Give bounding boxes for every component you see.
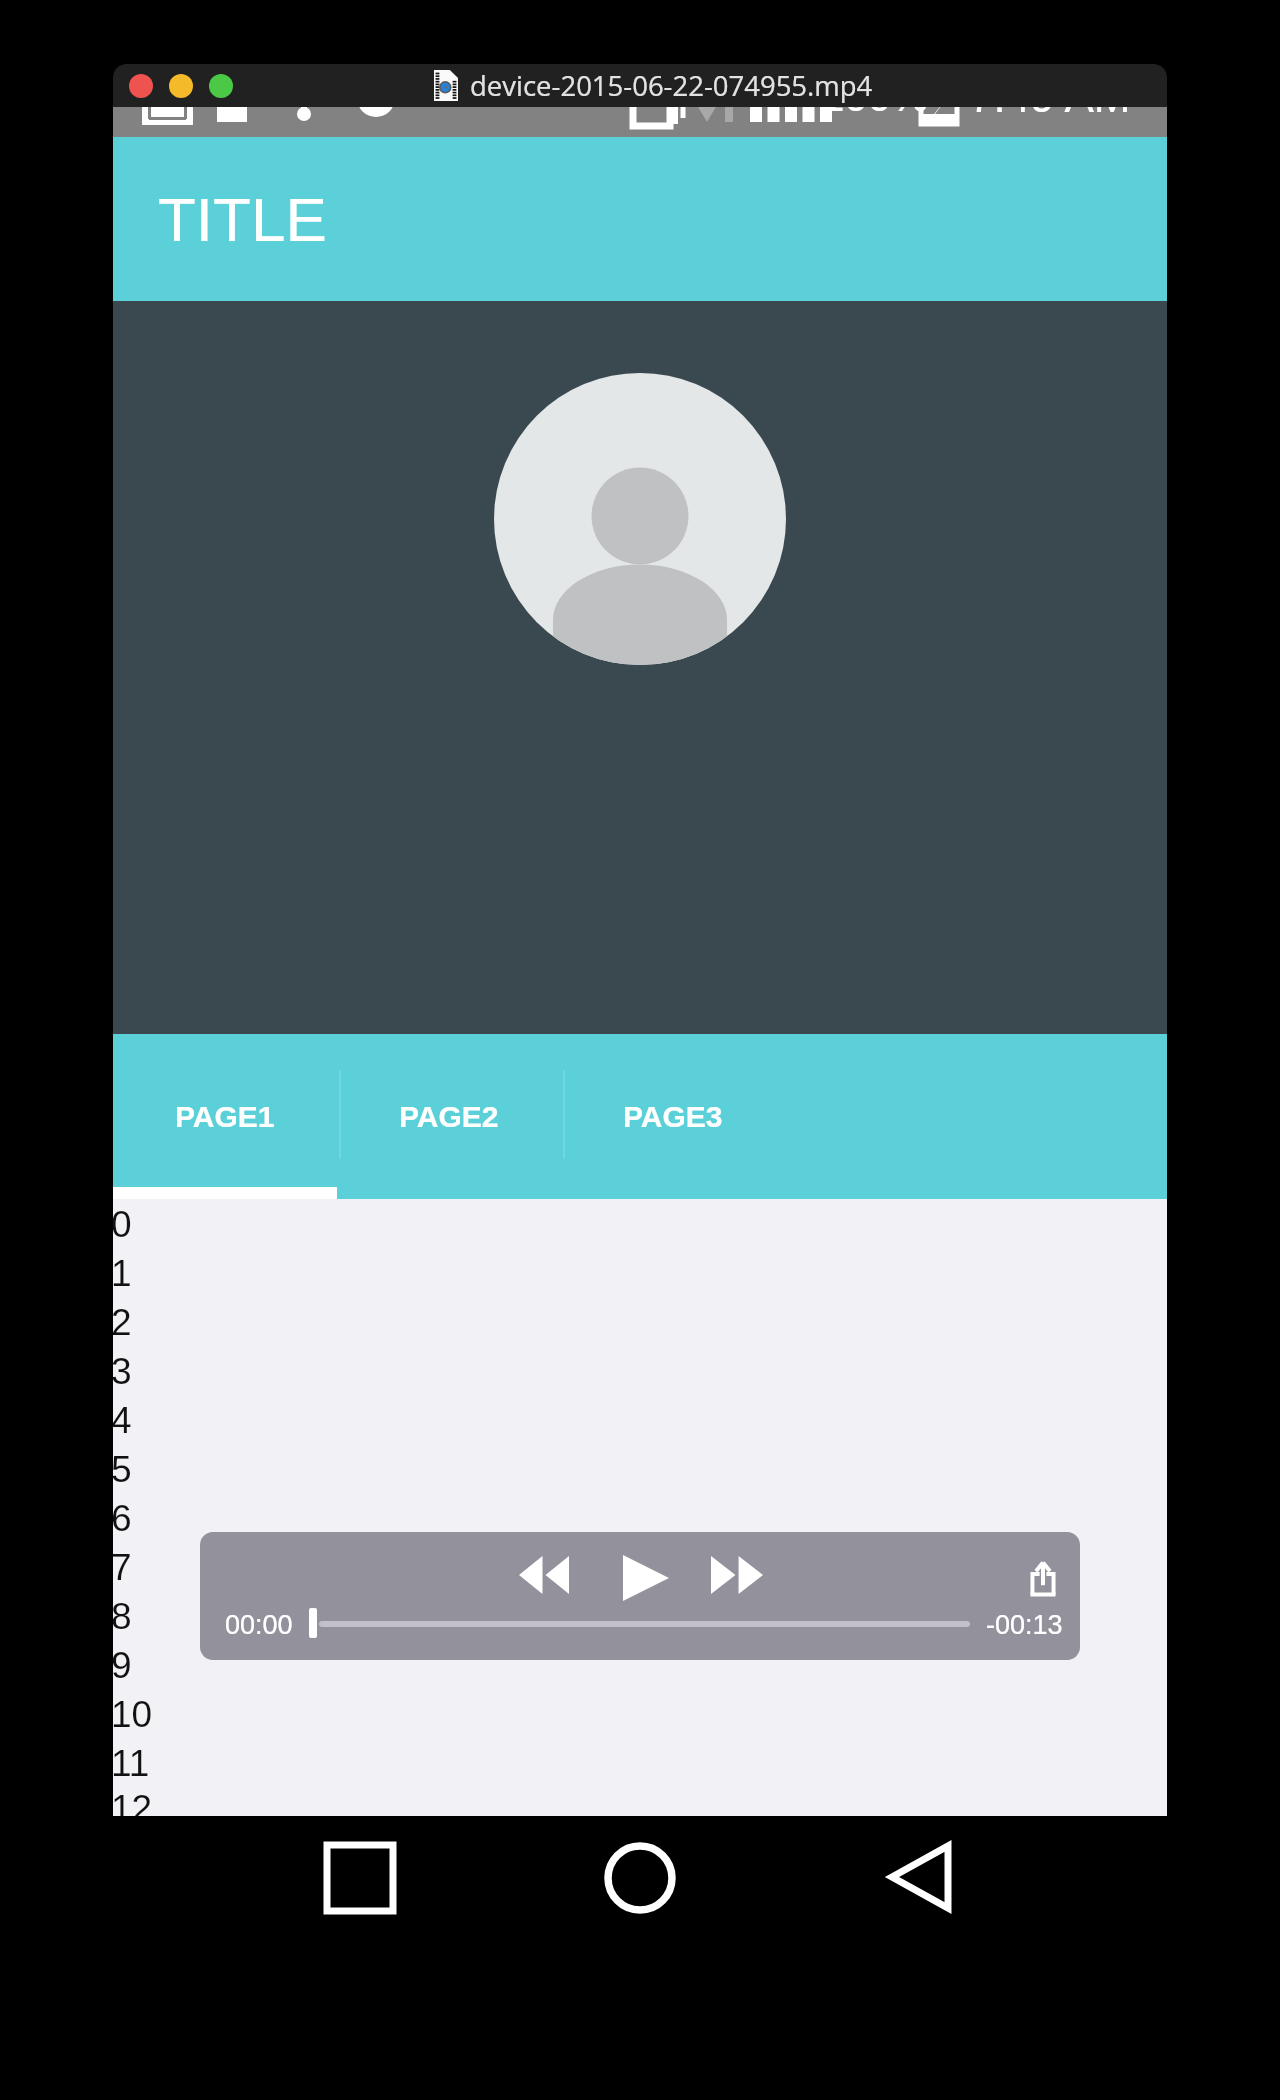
staticText: 5 xyxy=(113,1449,132,1490)
staticText: 3 xyxy=(113,1351,132,1392)
staticText: 2 xyxy=(113,1302,132,1343)
staticText: 6 xyxy=(113,1498,132,1539)
staticText: 9 xyxy=(113,1645,132,1686)
button[interactable]: Close window xyxy=(129,74,153,98)
staticText: 10 xyxy=(113,1694,153,1735)
button[interactable]: Minimize window xyxy=(169,74,193,98)
button[interactable]: Recents xyxy=(324,1842,396,1914)
staticText: -00:13 xyxy=(986,1610,1063,1640)
staticText: TITLE xyxy=(158,185,327,254)
button[interactable]: PAGE1 xyxy=(113,1034,337,1199)
button[interactable]: PAGE3 xyxy=(561,1034,785,1199)
button[interactable]: Share xyxy=(1026,1560,1060,1596)
staticText: PAGE3 xyxy=(623,1100,723,1134)
staticText: PAGE2 xyxy=(399,1100,499,1134)
button[interactable]: PAGE2 xyxy=(337,1034,561,1199)
button[interactable]: Fast forward xyxy=(711,1556,763,1594)
button[interactable]: Maximize window xyxy=(209,74,233,98)
button[interactable]: Home xyxy=(604,1842,676,1914)
button[interactable]: Rewind xyxy=(519,1556,569,1594)
staticText: 1 xyxy=(113,1253,132,1294)
staticText: 100% xyxy=(821,73,929,120)
staticText: device-2015-06-22-074955.mp4 xyxy=(470,67,873,104)
staticText: 7:49 AM xyxy=(969,72,1131,121)
staticText: 12 xyxy=(113,1788,153,1816)
staticText: 11 xyxy=(113,1743,150,1784)
staticText: 7 xyxy=(113,1547,132,1588)
staticText: 4 xyxy=(113,1400,132,1441)
staticText: 8 xyxy=(113,1596,132,1637)
staticText: PAGE1 xyxy=(175,1100,275,1134)
button[interactable]: Back xyxy=(888,1842,952,1912)
staticText: 00:00 xyxy=(225,1610,293,1640)
button[interactable]: Play xyxy=(623,1555,669,1601)
staticText: 0 xyxy=(113,1204,132,1245)
